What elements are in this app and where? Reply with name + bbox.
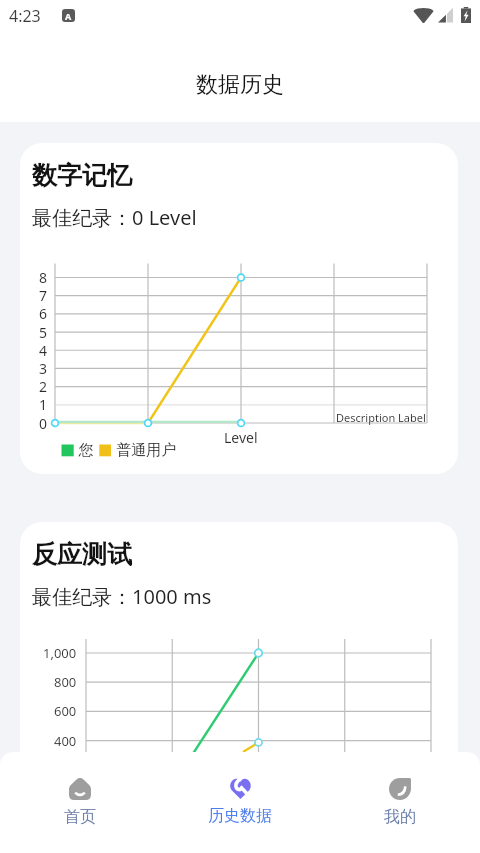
button[interactable]: 历史数据 [160, 752, 320, 826]
staticText: 首页 [64, 807, 96, 827]
other: 我的 [389, 778, 411, 800]
staticText: 反应测试 [32, 539, 132, 570]
button[interactable]: 我的 [320, 752, 480, 827]
staticText: 历史数据 [208, 806, 272, 826]
other: 首页 [69, 778, 91, 800]
button[interactable]: 首页 [0, 752, 160, 827]
other: 历史数据 [230, 778, 251, 799]
staticText: 数据历史 [196, 71, 284, 99]
staticText: 最佳纪录：0 Level [32, 204, 197, 231]
staticText: 数字记忆 [32, 160, 132, 191]
staticText: 我的 [384, 807, 416, 827]
staticText: 最佳纪录：1000 ms [32, 583, 212, 610]
staticText: 4:23 [9, 5, 41, 27]
staticText: A [65, 10, 72, 22]
